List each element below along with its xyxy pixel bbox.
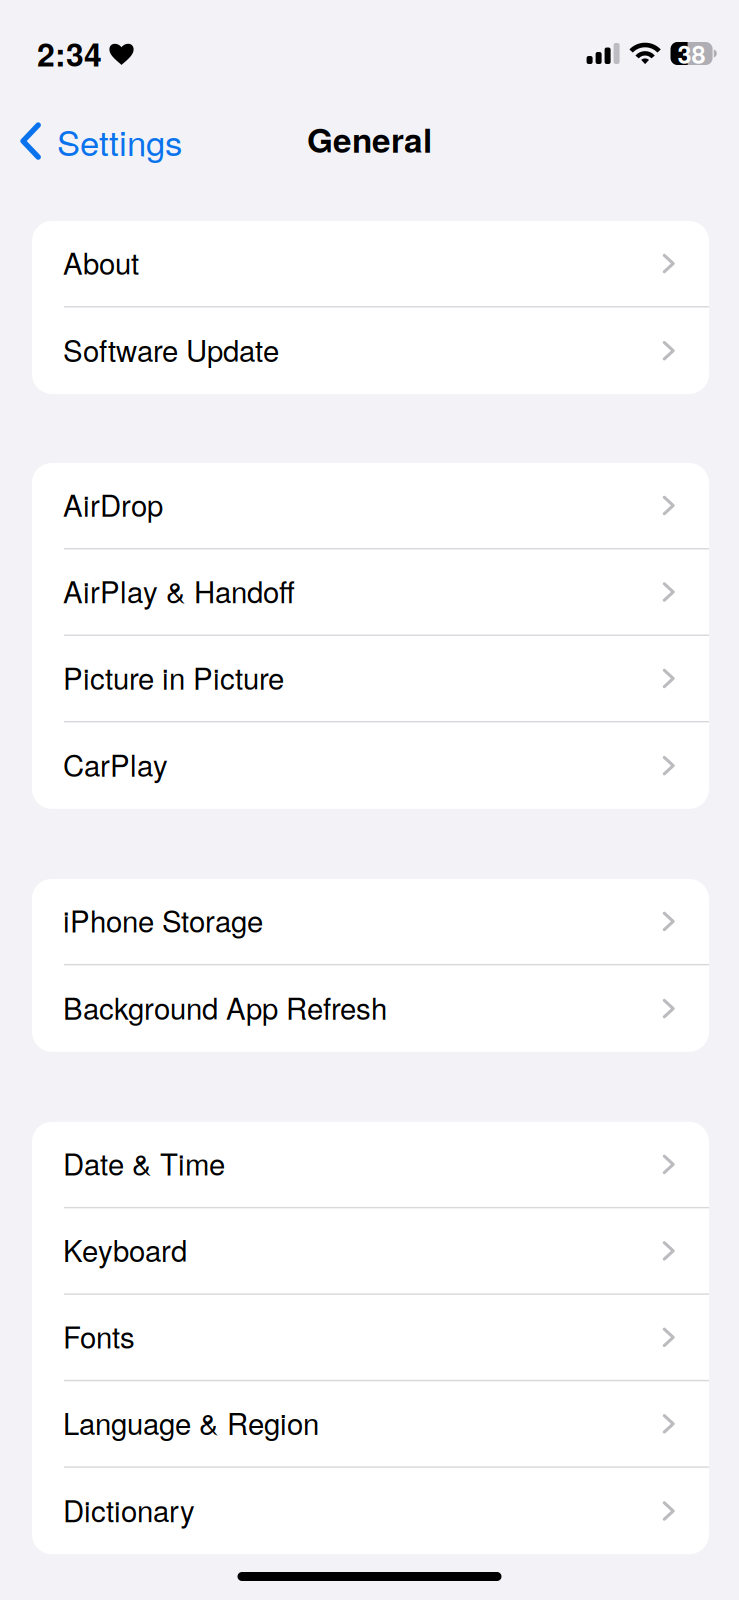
staticText: General <box>307 115 432 163</box>
button[interactable]: AirDrop <box>32 463 709 548</box>
staticText: Background App Refresh <box>63 986 387 1028</box>
staticText: Language & Region <box>63 1401 319 1443</box>
button[interactable]: Background App Refresh <box>32 965 709 1052</box>
staticText: Date & Time <box>63 1142 225 1184</box>
staticText: AirPlay & Handoff <box>63 569 295 611</box>
button[interactable]: Language & Region <box>32 1381 709 1466</box>
staticText: Dictionary <box>63 1488 195 1530</box>
button[interactable]: iPhone Storage <box>32 879 709 964</box>
staticText: 2:34 <box>37 31 102 76</box>
button[interactable]: Dictionary <box>32 1468 709 1554</box>
button[interactable]: About <box>32 221 709 306</box>
staticText: Settings <box>57 116 182 166</box>
staticText: Picture in Picture <box>63 656 284 698</box>
button[interactable]: Date & Time <box>32 1122 709 1207</box>
button[interactable]: Keyboard <box>32 1208 709 1293</box>
button[interactable]: Settings <box>0 108 196 174</box>
staticText: About <box>63 241 139 283</box>
staticText: Fonts <box>63 1315 135 1357</box>
staticText: AirDrop <box>63 483 163 525</box>
staticText: 38 <box>678 35 706 72</box>
button[interactable]: Picture in Picture <box>32 636 709 721</box>
staticText: CarPlay <box>63 743 168 785</box>
button[interactable]: Software Update <box>32 307 709 394</box>
button[interactable]: CarPlay <box>32 722 709 809</box>
staticText: Software Update <box>63 328 279 370</box>
staticText: iPhone Storage <box>63 899 263 941</box>
staticText: Keyboard <box>63 1228 187 1270</box>
button[interactable]: Fonts <box>32 1295 709 1380</box>
button[interactable]: AirPlay & Handoff <box>32 549 709 634</box>
